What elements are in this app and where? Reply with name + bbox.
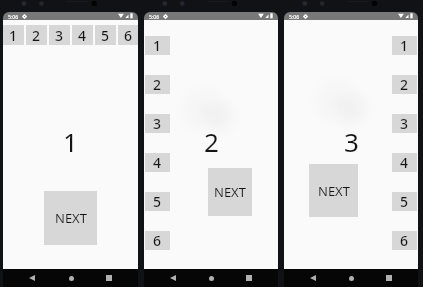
- button[interactable]: 3: [145, 114, 170, 133]
- staticText: 1: [63, 124, 78, 159]
- button[interactable]: Recents: [240, 269, 258, 287]
- staticText: NEXT: [318, 182, 350, 200]
- staticText: 5:06: [149, 13, 160, 20]
- button[interactable]: 5: [145, 192, 170, 211]
- staticText: 5: [153, 192, 162, 211]
- button[interactable]: 2: [26, 25, 47, 45]
- staticText: 4: [400, 153, 409, 172]
- button[interactable]: 6: [118, 25, 138, 45]
- staticText: 6: [124, 26, 133, 45]
- button[interactable]: 4: [145, 153, 170, 172]
- staticText: 3: [400, 114, 409, 133]
- staticText: 6: [153, 231, 162, 250]
- button[interactable]: NEXT: [44, 191, 97, 245]
- staticText: 1: [400, 36, 409, 55]
- staticText: 5:06: [8, 13, 19, 20]
- button[interactable]: Back: [164, 269, 182, 287]
- button[interactable]: Home: [342, 269, 360, 287]
- button[interactable]: 6: [145, 231, 170, 250]
- staticText: 2: [153, 75, 162, 94]
- button[interactable]: 5: [95, 25, 116, 45]
- staticText: 5: [101, 26, 110, 45]
- staticText: NEXT: [55, 209, 87, 227]
- staticText: NEXT: [214, 183, 246, 201]
- staticText: 3: [55, 26, 64, 45]
- staticText: 2: [400, 75, 409, 94]
- button[interactable]: Back: [23, 269, 41, 287]
- button[interactable]: 5: [392, 192, 417, 211]
- staticText: 3: [153, 114, 162, 133]
- staticText: 4: [78, 26, 87, 45]
- button[interactable]: Recents: [380, 269, 398, 287]
- button[interactable]: 1: [3, 25, 24, 45]
- staticText: 5:06: [289, 13, 300, 20]
- button[interactable]: 1: [392, 36, 417, 55]
- button[interactable]: 2: [145, 75, 170, 94]
- staticText: 2: [32, 26, 41, 45]
- staticText: 1: [9, 26, 18, 45]
- staticText: 2: [204, 124, 219, 159]
- staticText: 3: [344, 124, 359, 159]
- staticText: 5: [400, 192, 409, 211]
- button[interactable]: 1: [145, 36, 170, 55]
- button[interactable]: Back: [304, 269, 322, 287]
- button[interactable]: Recents: [100, 269, 118, 287]
- staticText: 6: [400, 231, 409, 250]
- button[interactable]: 6: [392, 231, 417, 250]
- button[interactable]: NEXT: [208, 168, 252, 216]
- button[interactable]: Home: [62, 269, 80, 287]
- button[interactable]: Home: [202, 269, 220, 287]
- staticText: 4: [153, 153, 162, 172]
- button[interactable]: 4: [72, 25, 93, 45]
- button[interactable]: NEXT: [309, 164, 358, 217]
- button[interactable]: 2: [392, 75, 417, 94]
- button[interactable]: 3: [49, 25, 70, 45]
- button[interactable]: 3: [392, 114, 417, 133]
- button[interactable]: 4: [392, 153, 417, 172]
- staticText: 1: [153, 36, 162, 55]
